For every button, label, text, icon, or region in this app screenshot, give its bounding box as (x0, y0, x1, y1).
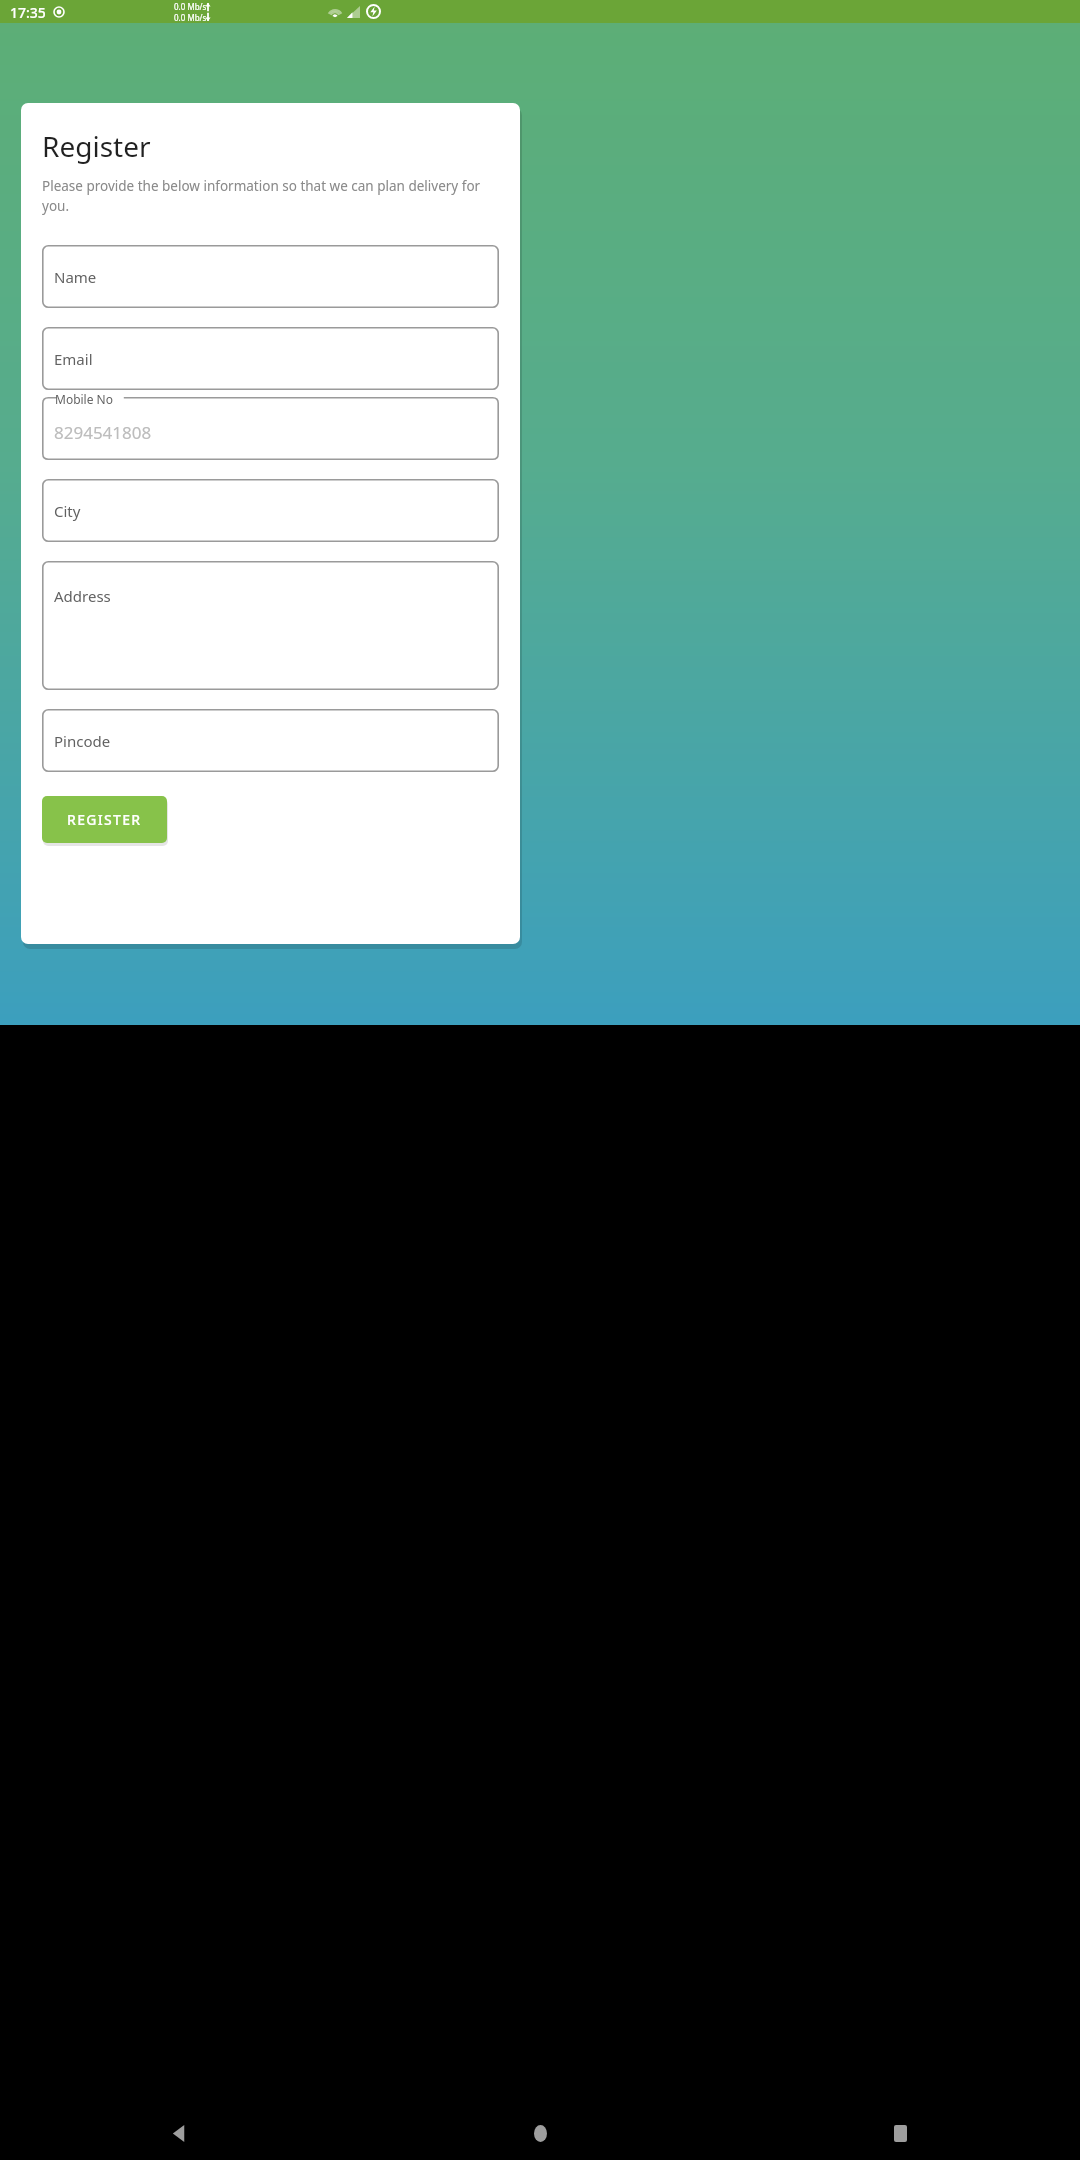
button[interactable]: City (42, 479, 499, 542)
staticText: Pincode (54, 731, 111, 751)
button[interactable]: Mobile No (42, 397, 499, 460)
button[interactable]: REGISTER (42, 796, 167, 843)
staticText: Name (54, 267, 97, 287)
button[interactable]: Recent apps (876, 2109, 924, 2157)
staticText: 0.0 Mb/s (174, 1, 207, 12)
staticText: Register (42, 127, 151, 165)
staticText: 17:35 (10, 3, 46, 22)
button[interactable]: Home (516, 2109, 564, 2157)
button[interactable]: Address (42, 561, 499, 690)
staticText: City (54, 501, 81, 521)
button[interactable]: Pincode (42, 709, 499, 772)
staticText: Mobile No (55, 391, 113, 407)
staticText: Email (54, 349, 93, 369)
button[interactable]: Back (156, 2109, 204, 2157)
staticText: 0.0 Mb/s (174, 12, 207, 23)
staticText: Please provide the below information so … (42, 177, 499, 215)
button[interactable]: Email (42, 327, 499, 390)
staticText: REGISTER (67, 810, 142, 829)
staticText: Address (54, 586, 111, 606)
button[interactable]: Name (42, 245, 499, 308)
staticText: 8294541808 (54, 421, 152, 444)
